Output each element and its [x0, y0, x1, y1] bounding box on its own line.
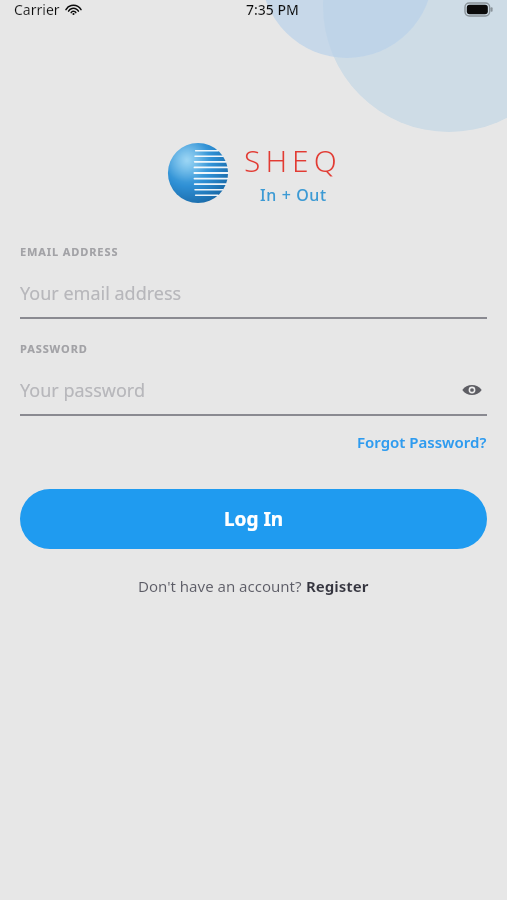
button[interactable]: Log In: [20, 489, 487, 549]
button[interactable]: Forgot Password?: [357, 428, 487, 456]
staticText: In + Out: [260, 184, 327, 206]
button[interactable]: Your password: [20, 374, 487, 416]
staticText: PASSWORD: [20, 341, 88, 356]
staticText: SHEQ: [244, 140, 342, 181]
staticText: EMAIL ADDRESS: [20, 244, 119, 259]
staticText: Don't have an account?: [138, 576, 306, 596]
staticText: Carrier: [14, 0, 60, 19]
staticText: Your email address: [20, 281, 487, 306]
button[interactable]: Show password: [457, 375, 487, 405]
staticText: Your password: [20, 378, 457, 403]
button[interactable]: Register: [306, 576, 369, 596]
staticText: Register: [306, 576, 369, 596]
button[interactable]: Your email address: [20, 277, 487, 319]
staticText: Log In: [224, 506, 284, 532]
staticText: Forgot Password?: [357, 432, 487, 452]
staticText: 7:35 PM: [246, 0, 299, 19]
